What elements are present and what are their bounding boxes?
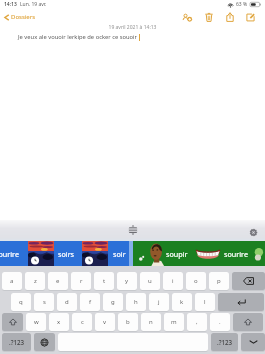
staticText: y bbox=[125, 277, 129, 285]
button[interactable]: Share bbox=[219, 10, 240, 24]
staticText: p bbox=[217, 277, 221, 285]
button[interactable]: u bbox=[140, 272, 160, 290]
button[interactable]: Photo suggestion bbox=[82, 241, 108, 266]
other: Return bbox=[237, 298, 246, 306]
button[interactable]: d bbox=[57, 293, 77, 311]
button[interactable]: k bbox=[172, 293, 192, 311]
button[interactable]: Shift bbox=[233, 313, 263, 331]
staticText: q bbox=[19, 298, 23, 306]
staticText: soirs bbox=[58, 249, 75, 259]
other: Shift bbox=[9, 318, 17, 326]
staticText: , bbox=[196, 318, 198, 326]
staticText: .?123 bbox=[217, 338, 233, 346]
button[interactable]: sourire bbox=[0, 241, 22, 266]
button[interactable]: m bbox=[164, 313, 184, 331]
staticText: b bbox=[126, 318, 130, 326]
staticText: c bbox=[81, 318, 84, 326]
staticText: v bbox=[103, 318, 107, 326]
button[interactable]: sourire bbox=[222, 241, 250, 266]
button[interactable]: c bbox=[72, 313, 92, 331]
button[interactable]: p bbox=[209, 272, 229, 290]
staticText: Je veux ale vouoir lerkipe de ocker ce s… bbox=[18, 33, 138, 41]
button[interactable]: Sigh emoji bbox=[146, 241, 165, 266]
button[interactable]: Dossiers bbox=[3, 11, 37, 23]
staticText: soupir bbox=[166, 249, 188, 259]
button[interactable]: Smile emoji bbox=[196, 248, 220, 260]
staticText: u bbox=[148, 277, 152, 285]
staticText: d bbox=[65, 298, 69, 306]
button[interactable]: z bbox=[25, 272, 45, 290]
button[interactable]: Keyboard options bbox=[126, 222, 140, 238]
staticText: i bbox=[172, 277, 174, 285]
staticText: sourire bbox=[224, 249, 248, 259]
button[interactable]: Settings bbox=[247, 226, 259, 238]
staticText: r bbox=[80, 277, 83, 285]
staticText: h bbox=[134, 298, 138, 306]
button[interactable]: g bbox=[103, 293, 123, 311]
button[interactable]: . bbox=[210, 313, 230, 331]
button[interactable]: Photo suggestion bbox=[28, 241, 54, 266]
staticText: .?123 bbox=[9, 338, 25, 346]
button[interactable]: .?123 bbox=[211, 333, 238, 351]
staticText: 63 % bbox=[236, 1, 248, 8]
button[interactable]: Delete bbox=[198, 10, 219, 24]
staticText: 19 avril 2021 à 14:13 bbox=[0, 24, 265, 31]
button[interactable]: New note bbox=[240, 10, 261, 24]
staticText: a bbox=[10, 277, 14, 285]
button[interactable]: w bbox=[26, 313, 46, 331]
button[interactable]: r bbox=[71, 272, 91, 290]
staticText: m bbox=[171, 318, 177, 326]
button[interactable]: Add people bbox=[177, 10, 198, 24]
button[interactable]: Switch keyboard bbox=[34, 333, 55, 351]
button[interactable]: x bbox=[49, 313, 69, 331]
staticText: x bbox=[57, 318, 61, 326]
staticText: f bbox=[89, 298, 92, 306]
staticText: s bbox=[43, 298, 46, 306]
button[interactable]: l bbox=[195, 293, 215, 311]
button[interactable]: soupir bbox=[166, 241, 188, 266]
button[interactable]: h bbox=[126, 293, 146, 311]
button[interactable]: b bbox=[118, 313, 138, 331]
button[interactable]: e bbox=[48, 272, 68, 290]
button[interactable]: , bbox=[187, 313, 207, 331]
staticText: sourire bbox=[0, 249, 19, 259]
staticText: Lun. 19 avr. bbox=[20, 1, 47, 8]
other: Shift bbox=[244, 318, 252, 326]
staticText: l bbox=[204, 298, 206, 306]
button[interactable]: t bbox=[94, 272, 114, 290]
button[interactable]: Return bbox=[218, 293, 264, 311]
button[interactable]: o bbox=[186, 272, 206, 290]
other: Backspace bbox=[243, 277, 254, 285]
button[interactable]: q bbox=[11, 293, 31, 311]
staticText: e bbox=[56, 277, 60, 285]
button[interactable]: soir bbox=[110, 241, 128, 266]
button[interactable]: n bbox=[141, 313, 161, 331]
staticText: j bbox=[158, 298, 160, 306]
staticText: g bbox=[111, 298, 115, 306]
button[interactable]: soirs bbox=[56, 241, 76, 266]
button[interactable]: v bbox=[95, 313, 115, 331]
staticText: soir bbox=[113, 249, 126, 259]
button[interactable]: Backspace bbox=[232, 272, 265, 290]
staticText: t bbox=[103, 277, 106, 285]
button[interactable]: y bbox=[117, 272, 137, 290]
button[interactable]: Shift bbox=[2, 313, 23, 331]
staticText: o bbox=[194, 277, 198, 285]
staticText: z bbox=[34, 277, 37, 285]
staticText: . bbox=[219, 318, 221, 326]
staticText: 14:13 bbox=[4, 1, 17, 8]
staticText: w bbox=[34, 318, 39, 326]
button[interactable]: Hide keyboard bbox=[241, 333, 265, 351]
button[interactable]: a bbox=[2, 272, 22, 290]
button[interactable]: s bbox=[34, 293, 54, 311]
button[interactable]: j bbox=[149, 293, 169, 311]
button[interactable]: f bbox=[80, 293, 100, 311]
staticText: n bbox=[149, 318, 153, 326]
staticText: Dossiers bbox=[11, 13, 36, 21]
button[interactable]: .?123 bbox=[2, 333, 31, 351]
button[interactable]: i bbox=[163, 272, 183, 290]
other: Hide keyboard bbox=[249, 339, 258, 345]
staticText: k bbox=[180, 298, 184, 306]
other: Switch keyboard bbox=[40, 338, 49, 347]
